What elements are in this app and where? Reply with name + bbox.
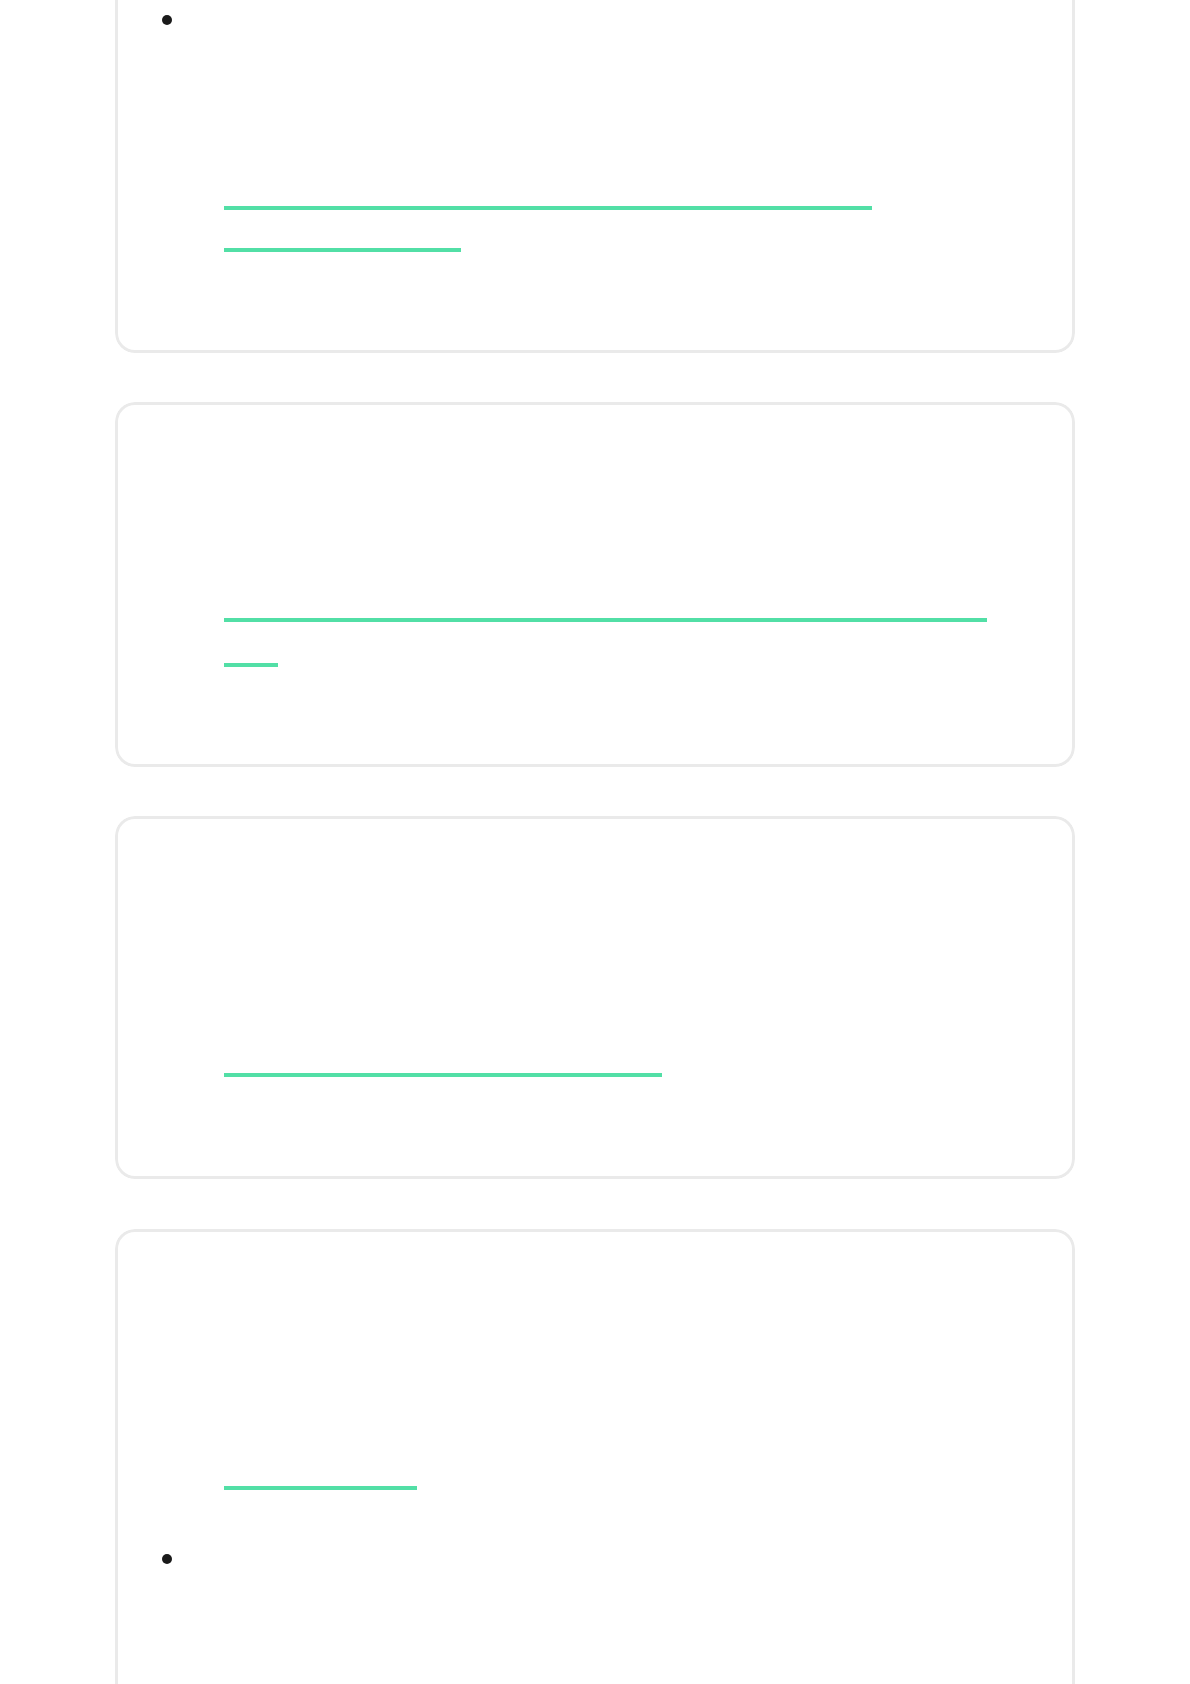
button[interactable]: https://support.example.com/account/rece…	[224, 590, 987, 632]
button[interactable]: Manage notification settings	[224, 1045, 662, 1087]
staticText: Privacy policy	[224, 1458, 389, 1493]
button[interactable]: Your data is stored securely and is neve…	[115, 1229, 1075, 1684]
staticText: Manage notification settings	[224, 1045, 573, 1080]
button[interactable]: Receipts are generated automatically for…	[115, 402, 1075, 767]
staticText: https://support.example.com/account/rece…	[224, 590, 955, 625]
button[interactable]: https://support.example.com/billing/over…	[224, 178, 872, 220]
button[interactable]: Keep a record of every transaction so th…	[115, 0, 1075, 353]
staticText: https://support.example.com/billing/over…	[224, 178, 784, 213]
staticText: Learn more here	[224, 220, 428, 255]
button[interactable]: FAQ	[224, 635, 278, 677]
button[interactable]: Learn more here	[224, 220, 461, 262]
staticText: FAQ	[224, 635, 274, 670]
button[interactable]: Privacy policy	[224, 1458, 417, 1500]
button[interactable]: Notifications can be adjusted at any tim…	[115, 816, 1075, 1179]
